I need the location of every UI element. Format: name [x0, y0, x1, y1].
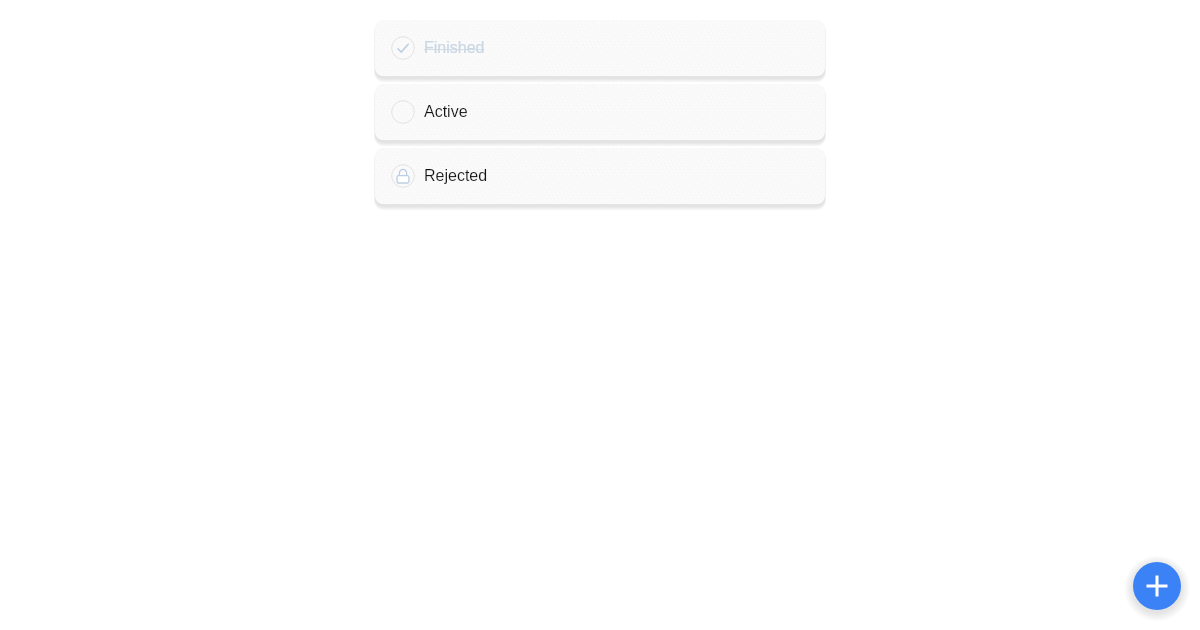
- other: Locked: [391, 164, 415, 188]
- staticText: Rejected: [424, 167, 488, 185]
- other: Not completed: [391, 100, 415, 124]
- button[interactable]: Add task: [1133, 562, 1181, 610]
- button[interactable]: Not completed: [375, 84, 825, 140]
- staticText: Finished: [424, 39, 485, 57]
- other: Completed: [391, 36, 415, 60]
- button[interactable]: Completed: [375, 20, 825, 76]
- staticText: Active: [424, 103, 468, 121]
- button[interactable]: Locked: [375, 148, 825, 204]
